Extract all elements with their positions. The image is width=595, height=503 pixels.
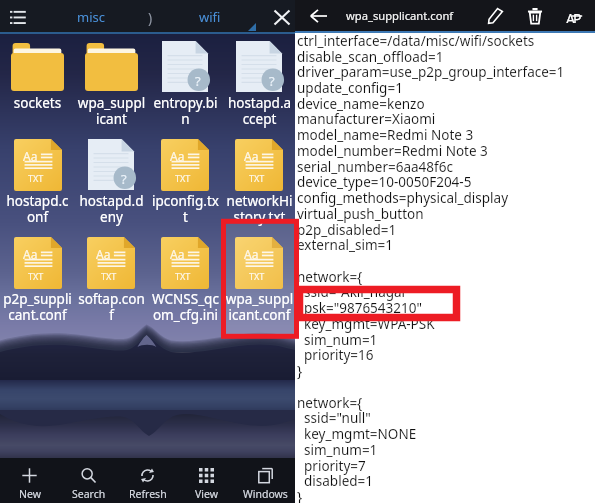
staticText: ipconfig.txt [151, 192, 220, 226]
staticText: wpa_supplicant.conf [346, 8, 454, 23]
staticText: ) [148, 8, 153, 27]
staticText: serial_number=6aa48f6c [297, 158, 453, 176]
staticText: hostapd.accept [225, 94, 294, 128]
staticText: driver_param=use_p2p_group_interface=1 [297, 63, 565, 81]
staticText: sim_num=1 [297, 331, 378, 349]
button[interactable]: Windows [236, 458, 295, 503]
staticText: model_name=Redmi Note 3 [297, 126, 474, 144]
staticText: P [573, 9, 582, 23]
button[interactable]: ? [148, 38, 222, 136]
staticText: TXT [101, 270, 117, 282]
button[interactable]: Search [59, 458, 118, 503]
staticText: softap.conf [77, 290, 146, 324]
staticText: device_name=kenzo [297, 95, 425, 113]
staticText: Aa [23, 148, 38, 164]
staticText: ssid="null" [297, 409, 371, 427]
staticText: manufacturer=Xiaomi [297, 110, 436, 128]
staticText: Search [72, 487, 106, 501]
staticText: A [566, 9, 575, 23]
button[interactable]: Aa [1, 234, 74, 332]
staticText: ssid="Akil_nagar" [297, 283, 414, 301]
staticText: TXT [175, 172, 191, 184]
staticText: network={ [297, 268, 363, 286]
staticText: p2p_disabled=1 [297, 221, 397, 239]
staticText: wpa_supplicant [77, 94, 146, 128]
button[interactable]: Aa [222, 234, 296, 332]
staticText: key_mgmt=NONE [297, 425, 417, 443]
staticText: ? [269, 72, 275, 90]
button[interactable]: Close [266, 0, 298, 34]
staticText: model_number=Redmi Note 3 [297, 142, 488, 160]
button[interactable]: Aa [148, 234, 222, 332]
staticText: TXT [28, 270, 44, 282]
button[interactable]: ctrl_interface=/data/misc/wifi/sockets [295, 33, 595, 503]
staticText: TXT [175, 270, 191, 282]
staticText: WCNSS_qcom_cfg.ini [151, 290, 220, 324]
staticText: Aa [244, 148, 259, 164]
staticText: sim_num=1 [297, 441, 378, 459]
staticText: psk="9876543210" [297, 299, 422, 317]
staticText: sockets [3, 94, 72, 112]
button[interactable]: wpa_supplicant [74, 38, 148, 136]
button[interactable]: ? [74, 136, 148, 234]
staticText: hostapd.conf [3, 192, 72, 226]
staticText: TXT [28, 172, 44, 184]
button[interactable]: View [177, 458, 236, 503]
staticText: TXT [249, 172, 265, 184]
button[interactable]: misc [62, 0, 120, 34]
button[interactable]: Delete [519, 0, 551, 31]
staticText: external_sim=1 [297, 236, 393, 254]
staticText: TXT [249, 270, 265, 282]
staticText: network={ [297, 394, 363, 412]
staticText: Aa [170, 148, 185, 164]
staticText: entropy.bin [151, 94, 220, 128]
staticText: View [195, 487, 218, 501]
staticText: } [297, 488, 303, 503]
button[interactable]: New [0, 458, 59, 503]
staticText: networkHistory.txt [225, 192, 294, 226]
staticText: key_mgmt=WPA-PSK [297, 315, 435, 333]
staticText: ? [195, 72, 201, 90]
staticText: Aa [96, 246, 111, 262]
staticText: Aa [244, 246, 259, 262]
button[interactable]: Aa [222, 136, 296, 234]
staticText: Windows [243, 487, 288, 501]
staticText: wifi [199, 8, 221, 26]
button[interactable]: Edit [479, 0, 511, 31]
staticText: priority=16 [297, 346, 374, 364]
staticText: virtual_push_button [297, 205, 424, 223]
button[interactable]: Font [559, 0, 591, 31]
button[interactable]: Aa [74, 234, 148, 332]
staticText: ? [121, 170, 127, 188]
staticText: misc [77, 8, 105, 26]
button[interactable]: Back [303, 1, 333, 31]
staticText: Refresh [129, 487, 167, 501]
staticText: Aa [23, 246, 38, 262]
button[interactable]: Aa [148, 136, 222, 234]
staticText: wpa_supplicant.conf [225, 290, 294, 324]
staticText: Aa [170, 246, 185, 262]
staticText: disabled=1 [297, 472, 373, 490]
staticText: p2p_supplicant.conf [3, 290, 72, 324]
staticText: disable_scan_offload=1 [297, 48, 444, 66]
staticText: ctrl_interface=/data/misc/wifi/sockets [297, 32, 535, 50]
staticText: hostapd.deny [77, 192, 146, 226]
staticText: } [297, 362, 303, 380]
button[interactable]: sockets [1, 38, 74, 136]
button[interactable]: wifi [185, 0, 235, 34]
button[interactable]: Aa [1, 136, 74, 234]
button[interactable]: Refresh [118, 458, 177, 503]
staticText: device_type=10-0050F204-5 [297, 173, 472, 191]
staticText: update_config=1 [297, 79, 403, 97]
button[interactable]: ? [222, 38, 296, 136]
staticText: priority=7 [297, 457, 366, 475]
button[interactable]: Menu [2, 1, 34, 33]
staticText: config_methods=physical_display [297, 189, 509, 207]
staticText: New [19, 487, 41, 501]
